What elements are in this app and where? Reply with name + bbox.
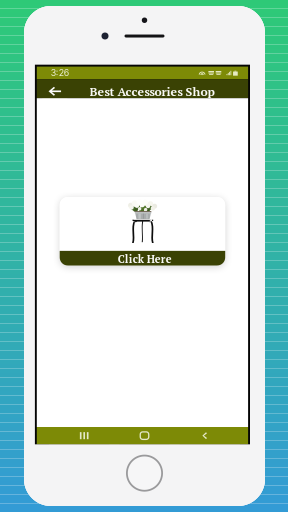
button[interactable]: Click Here <box>60 251 225 265</box>
button[interactable]: Recent apps <box>49 427 119 444</box>
staticText: Click Here <box>118 252 172 266</box>
staticText: Best Accessories Shop <box>89 83 214 99</box>
button[interactable]: Back <box>42 82 67 101</box>
button[interactable]: Back <box>169 427 240 444</box>
staticText: 3:26 <box>51 67 69 78</box>
button[interactable]: Home <box>109 427 180 444</box>
